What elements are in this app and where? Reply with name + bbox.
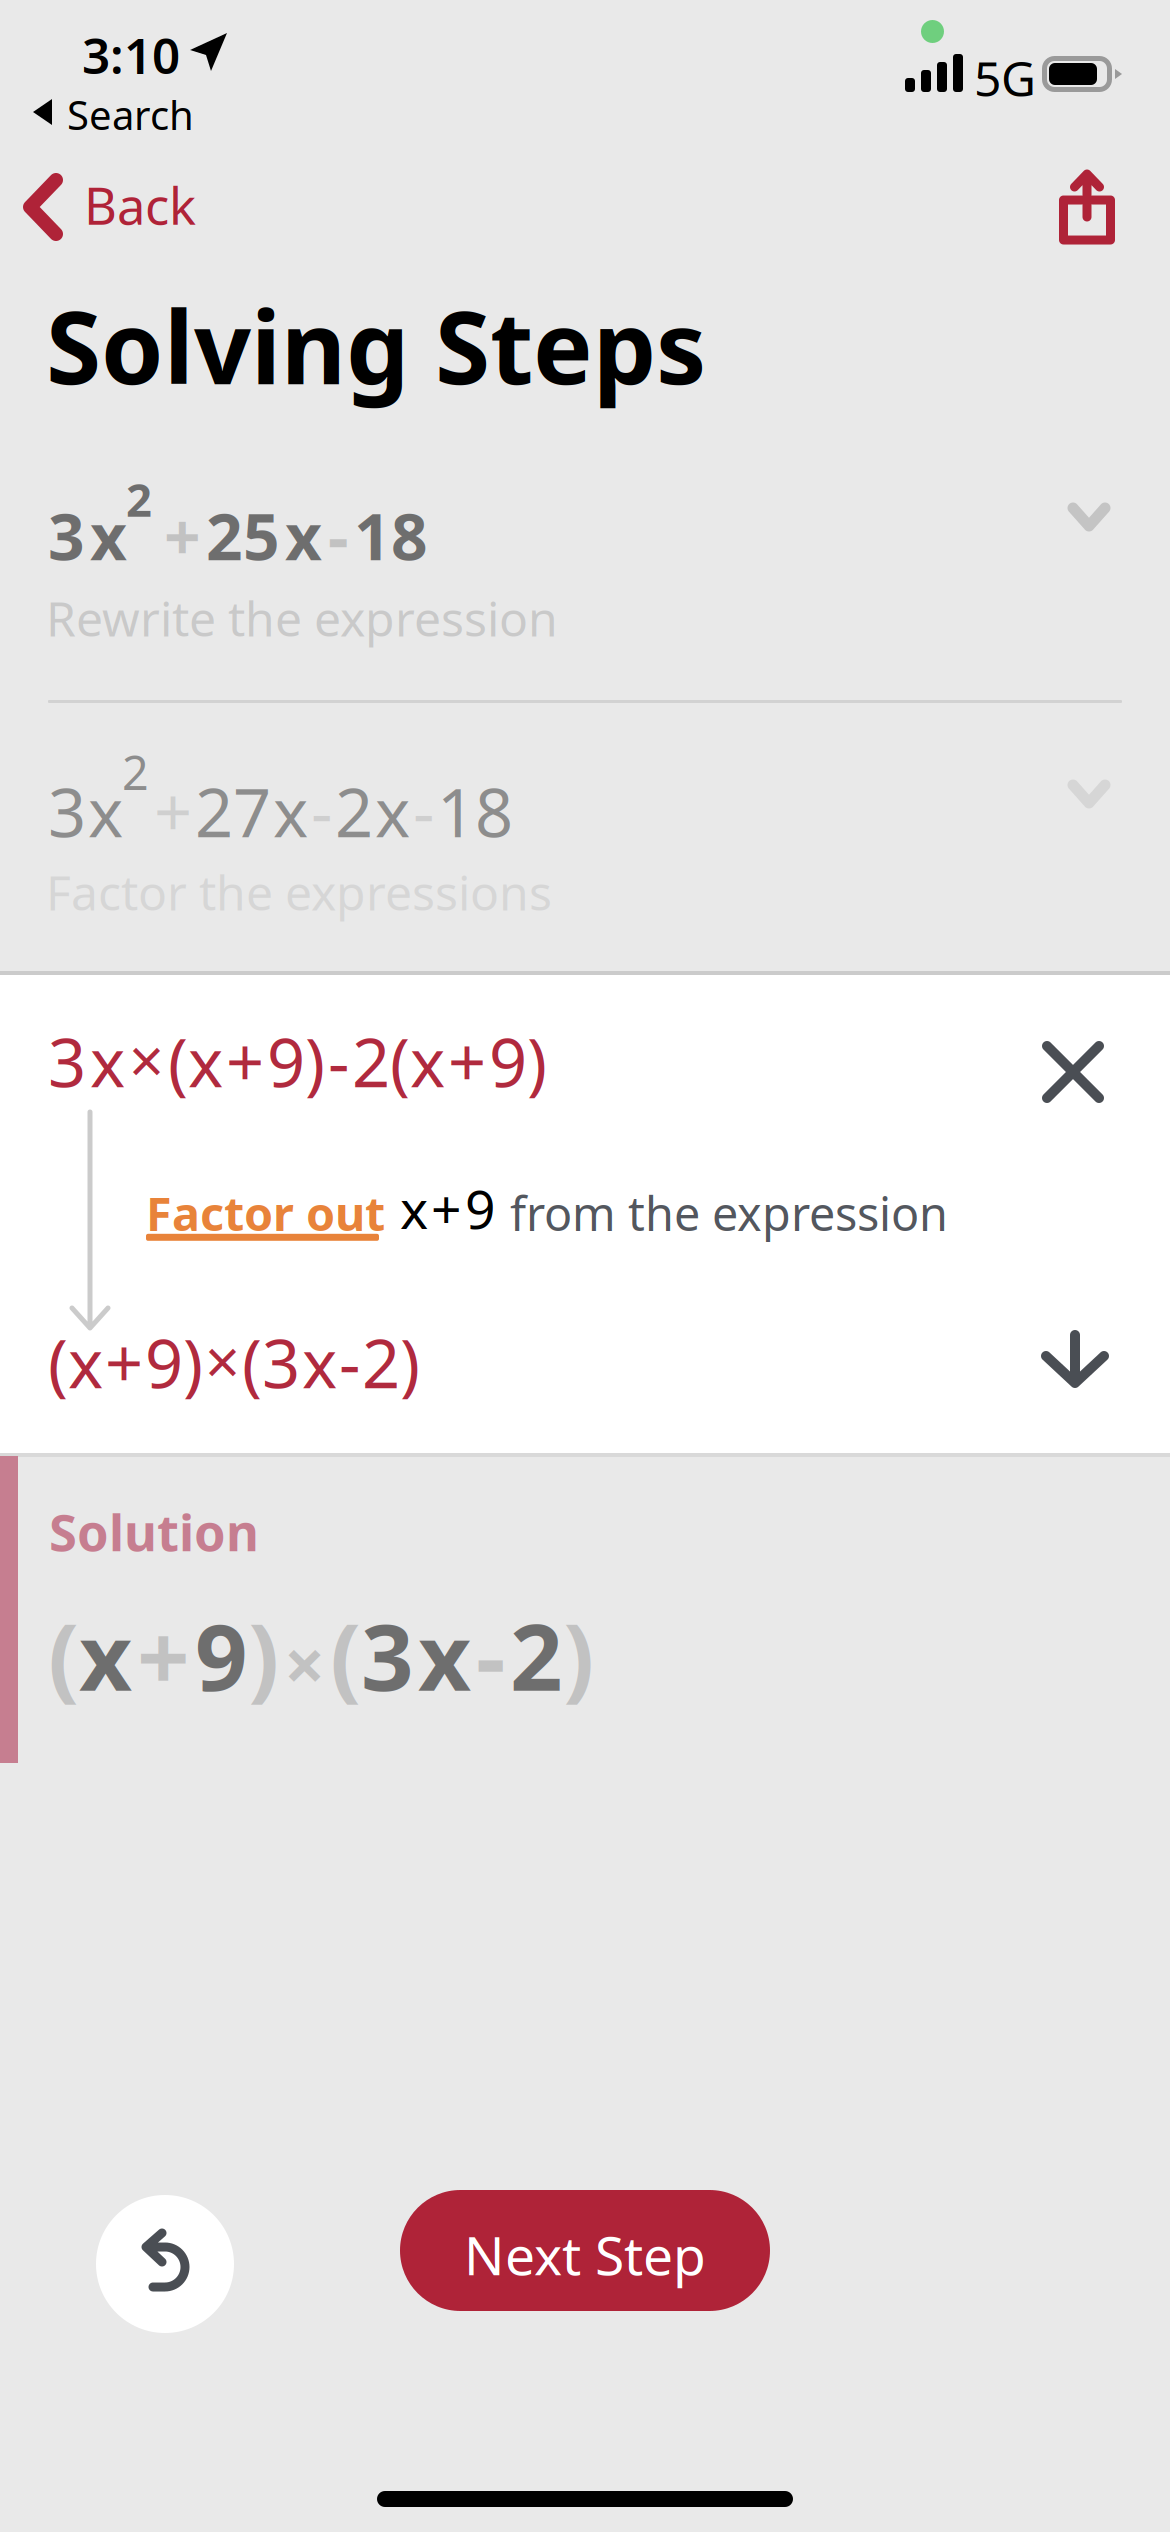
staticText: - [413, 767, 434, 855]
staticText: - [311, 767, 332, 855]
staticText: 9) [267, 1017, 325, 1105]
staticText: + [431, 1173, 462, 1244]
staticText: 2 [126, 469, 152, 529]
button[interactable]: Share [1032, 152, 1142, 262]
staticText: Back [84, 171, 196, 239]
staticText: 3 [48, 767, 86, 855]
button[interactable]: Undo [96, 2195, 234, 2333]
staticText: 3:10 [82, 22, 180, 87]
staticText: x [88, 767, 123, 855]
button[interactable]: Go to next step [1017, 1301, 1133, 1417]
staticText: Solving Steps [46, 279, 706, 412]
staticText: x [375, 767, 410, 855]
staticText: 25 [206, 493, 280, 578]
staticText: 3 [48, 1017, 86, 1105]
staticText: + [164, 493, 201, 578]
staticText: - [328, 1017, 349, 1105]
staticText: x [273, 767, 308, 855]
staticText: Factor out [146, 1182, 385, 1244]
staticText: Rewrite the expression [46, 586, 558, 650]
staticText: 2) [362, 1318, 420, 1406]
staticText: 2 [510, 1594, 563, 1716]
staticText: (x [48, 1318, 103, 1406]
staticText: × [129, 1019, 164, 1100]
staticText: Search [67, 88, 194, 141]
staticText: - [339, 1318, 360, 1406]
staticText: 3 [48, 493, 85, 578]
staticText: 9) [489, 1017, 547, 1105]
staticText: x [418, 1594, 471, 1716]
staticText: + [105, 1318, 143, 1406]
button[interactable]: Back [0, 155, 213, 259]
staticText: + [154, 767, 192, 855]
button[interactable]: Collapse step [1015, 1014, 1131, 1130]
button[interactable]: Expand step [1039, 468, 1139, 568]
staticText: x [285, 493, 322, 578]
staticText: 9 [195, 1594, 248, 1716]
staticText: from the expression [510, 1182, 948, 1244]
staticText: ( [48, 1594, 79, 1716]
staticText: - [328, 493, 348, 578]
staticText: × [284, 1616, 325, 1711]
staticText: x [302, 1318, 337, 1406]
staticText: Solution [49, 1498, 259, 1565]
staticText: x [90, 493, 127, 578]
staticText: 27 [195, 767, 271, 855]
staticText: Factor the expressions [46, 860, 552, 924]
button[interactable]: Next Step [400, 2190, 770, 2311]
button[interactable]: Expand step [1039, 745, 1139, 845]
staticText: 18 [354, 493, 428, 578]
staticText: + [226, 1017, 264, 1105]
staticText: 2 [335, 767, 373, 855]
staticText: 18 [437, 767, 513, 855]
staticText: Next Step [464, 2219, 706, 2290]
staticText: - [476, 1594, 505, 1716]
staticText: ) [248, 1594, 279, 1716]
staticText: x [90, 1017, 125, 1105]
staticText: + [448, 1017, 486, 1105]
staticText: 9 [465, 1173, 496, 1244]
staticText: 9) [145, 1318, 203, 1406]
staticText: x [400, 1173, 428, 1244]
staticText: × [205, 1320, 240, 1401]
staticText: (x [168, 1017, 223, 1105]
staticText: (3 [242, 1318, 300, 1406]
staticText: 5G [974, 46, 1036, 110]
staticText: 2 [122, 741, 149, 803]
staticText: 3 [361, 1594, 414, 1716]
staticText: + [137, 1594, 190, 1716]
staticText: ( [330, 1594, 361, 1716]
staticText: x [79, 1594, 132, 1716]
staticText: ) [563, 1594, 594, 1716]
staticText: 2(x [352, 1017, 445, 1105]
